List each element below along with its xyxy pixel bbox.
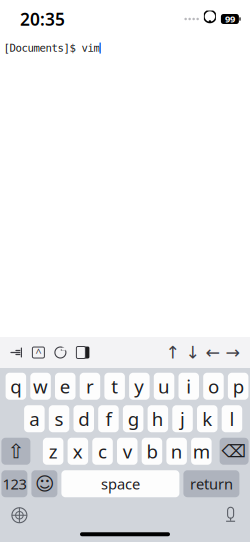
staticText: i [186, 374, 191, 399]
staticText: ← [206, 343, 221, 362]
button[interactable]: m [191, 438, 212, 465]
button[interactable]: space [61, 470, 179, 497]
staticText: h [152, 406, 164, 431]
staticText: t [111, 374, 118, 399]
staticText: n [171, 439, 183, 464]
staticText: o [208, 374, 219, 399]
button[interactable]: z [43, 438, 63, 465]
staticText: g [128, 406, 139, 431]
button[interactable]: y [129, 373, 150, 400]
button[interactable]: l [222, 405, 242, 432]
button[interactable]: d [73, 405, 94, 432]
staticText: ⌫ [222, 441, 247, 461]
button[interactable]: x [68, 438, 88, 465]
staticText: y [134, 374, 144, 399]
button[interactable]: u [154, 373, 174, 400]
button[interactable]: 123 [1, 470, 27, 497]
button[interactable]: Dictation [221, 506, 241, 524]
staticText: l [229, 406, 234, 431]
button[interactable]: e [55, 373, 75, 400]
button[interactable]: a [24, 405, 45, 432]
staticText: b [146, 439, 157, 464]
staticText: c [98, 439, 107, 464]
staticText: ⇧ [7, 440, 24, 463]
staticText: 99 [225, 13, 235, 25]
button[interactable]: Next keyboard [9, 506, 29, 524]
button[interactable]: j [172, 405, 193, 432]
button[interactable]: Right [226, 345, 241, 359]
staticText: return [190, 474, 233, 493]
button[interactable]: v [117, 438, 137, 465]
button[interactable]: n [166, 438, 187, 465]
staticText: s [54, 406, 63, 431]
staticText: v [123, 439, 132, 464]
button[interactable]: Tab [9, 346, 23, 359]
staticText: j [180, 406, 185, 431]
button[interactable]: r [80, 373, 100, 400]
button[interactable]: g [123, 405, 143, 432]
staticText: 20:35 [20, 7, 65, 30]
button[interactable]: t [104, 373, 125, 400]
button[interactable]: b [142, 438, 162, 465]
button[interactable]: h [148, 405, 168, 432]
staticText: z [49, 439, 58, 464]
button[interactable]: Shift [1, 438, 30, 465]
button[interactable]: Paste [75, 345, 90, 359]
staticText: [Documents]$ vim [3, 42, 99, 54]
staticText: w [33, 374, 48, 399]
button[interactable]: w [30, 373, 51, 400]
staticText: ↑ [166, 343, 181, 362]
button[interactable]: f [98, 405, 119, 432]
staticText: space [101, 474, 140, 493]
button[interactable]: Up [166, 345, 181, 359]
staticText: p [233, 374, 244, 399]
button[interactable]: Emoji [31, 470, 57, 497]
button[interactable]: i [178, 373, 199, 400]
staticText: a [29, 406, 39, 431]
staticText: d [78, 406, 89, 431]
button[interactable]: Left [206, 345, 221, 359]
staticText: m [193, 439, 210, 464]
staticText: u [158, 374, 170, 399]
staticText: r [86, 374, 94, 399]
staticText: ↓ [186, 343, 201, 362]
button[interactable]: Down [186, 345, 201, 359]
button[interactable]: Control [31, 346, 45, 359]
staticText: q [10, 374, 21, 399]
button[interactable]: k [197, 405, 217, 432]
button[interactable]: return [183, 470, 239, 497]
staticText: x [73, 439, 83, 464]
staticText: → [226, 343, 241, 362]
staticText: ☺ [35, 473, 54, 494]
button[interactable]: s [49, 405, 69, 432]
staticText: 123 [2, 474, 26, 493]
button[interactable]: Undo [53, 346, 67, 359]
button[interactable]: o [203, 373, 224, 400]
button[interactable]: q [6, 373, 26, 400]
staticText: ^ [35, 345, 41, 360]
staticText: f [105, 406, 111, 431]
button[interactable]: Delete [220, 438, 249, 465]
button[interactable]: c [92, 438, 113, 465]
button[interactable]: p [228, 373, 248, 400]
staticText: e [60, 374, 71, 399]
staticText: k [202, 406, 212, 431]
